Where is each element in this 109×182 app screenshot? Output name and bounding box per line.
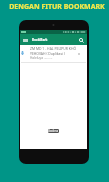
staticText: BookMark bbox=[32, 38, 48, 42]
staticText: Bookmark bbox=[48, 129, 59, 133]
button[interactable]: ZM MD 1 - HAL PELIPUR KHŌ bbox=[20, 45, 87, 62]
button[interactable]: Search bbox=[77, 36, 85, 44]
staticText: Haleluya .......... bbox=[30, 56, 53, 60]
button[interactable]: Open navigation menu bbox=[20, 34, 87, 45]
button[interactable]: Open navigation menu bbox=[22, 36, 28, 44]
staticText: DENGAN FITUR BOOKMARK bbox=[9, 2, 105, 12]
staticText: ZM MD 1 - HAL PELIPUR KHŌ bbox=[30, 46, 77, 51]
staticText: YEHOVAH ( Duplikasi ) bbox=[30, 51, 65, 56]
